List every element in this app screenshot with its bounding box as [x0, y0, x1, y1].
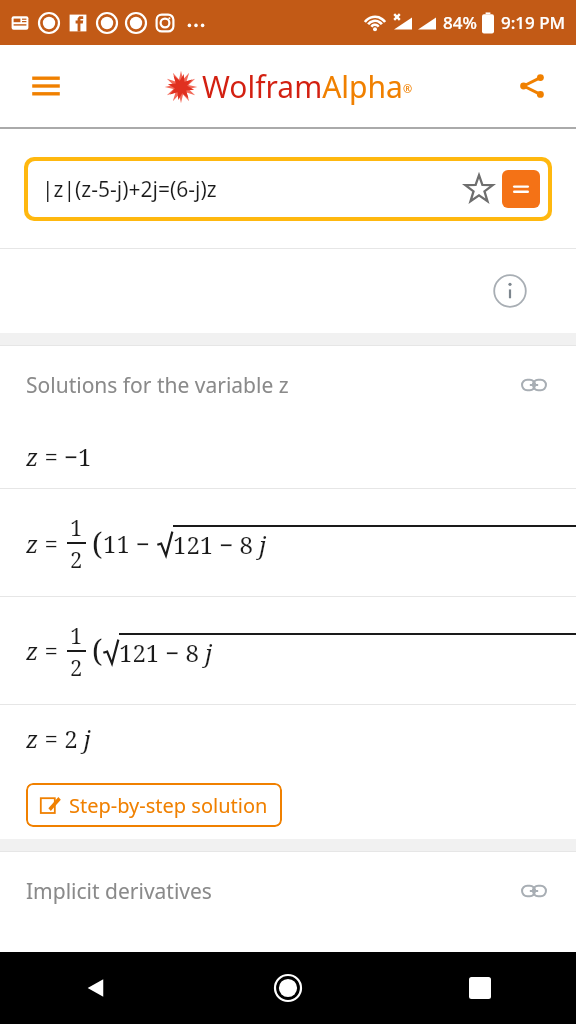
- staticText: (: [92, 523, 103, 564]
- staticText: (: [92, 630, 103, 671]
- staticText: 2: [70, 652, 83, 682]
- staticText: Solutions for the variable z: [26, 371, 514, 400]
- staticText: WolframAlpha®: [202, 66, 413, 107]
- button[interactable]: Solutions for the variable z: [26, 346, 554, 424]
- staticText: 1: [70, 512, 83, 542]
- button[interactable]: Step-by-step solution: [26, 783, 282, 827]
- button[interactable]: Back: [68, 960, 124, 1016]
- button[interactable]: Compute: [502, 170, 540, 208]
- button[interactable]: Information: [486, 267, 534, 315]
- staticText: Step-by-step solution: [69, 792, 268, 819]
- button[interactable]: Copy link: [514, 871, 554, 911]
- staticText: Implicit derivatives: [26, 877, 514, 906]
- staticText: 121 − 8 j: [119, 636, 213, 669]
- staticText: z =: [26, 634, 65, 667]
- staticText: 9:19 PM: [501, 11, 566, 34]
- staticText: z = 2 j: [26, 722, 91, 755]
- button[interactable]: Home: [260, 960, 316, 1016]
- staticText: z = −1: [26, 440, 92, 473]
- button[interactable]: |z|(z-5-j)+2j=(6-j)z: [28, 161, 548, 217]
- button[interactable]: Implicit derivatives: [26, 852, 554, 930]
- staticText: 121 − 8 j: [173, 528, 267, 561]
- button[interactable]: z = 2 j: [26, 705, 576, 771]
- button[interactable]: z = −1: [26, 424, 576, 488]
- staticText: 2: [70, 544, 83, 574]
- button[interactable]: Favorite: [456, 166, 502, 212]
- button[interactable]: Recent apps: [452, 960, 508, 1016]
- button[interactable]: z =: [26, 597, 576, 704]
- button[interactable]: Share: [506, 60, 558, 112]
- staticText: 84%: [443, 11, 477, 34]
- staticText: 1: [70, 620, 83, 650]
- button[interactable]: z =: [26, 489, 576, 596]
- button[interactable]: Menu: [20, 60, 72, 112]
- staticText: |z|(z-5-j)+2j=(6-j)z: [42, 175, 456, 204]
- button[interactable]: Copy link: [514, 365, 554, 405]
- staticText: z =: [26, 527, 65, 560]
- staticText: 11 −: [103, 527, 157, 560]
